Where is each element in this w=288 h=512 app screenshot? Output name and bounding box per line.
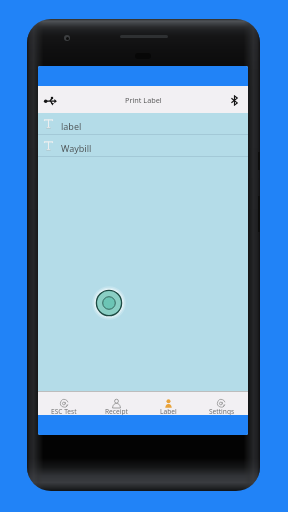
button[interactable]: Bluetooth [224,90,244,110]
staticText: Print Label [125,95,162,105]
staticText: label [61,120,82,132]
staticText: Label [160,407,177,416]
button[interactable]: Print [92,286,126,320]
staticText: Settings [209,407,235,416]
staticText: ESC Test [51,407,77,416]
staticText: Waybill [61,142,92,154]
button[interactable]: Settings [195,392,248,415]
button[interactable]: label [38,113,248,134]
staticText: Receipt [105,407,128,416]
button[interactable]: Waybill [38,135,248,156]
button[interactable]: ESC Test [38,392,90,415]
button[interactable]: Label [142,392,195,415]
button[interactable]: USB connection [40,90,60,110]
button[interactable]: Receipt [90,392,142,415]
